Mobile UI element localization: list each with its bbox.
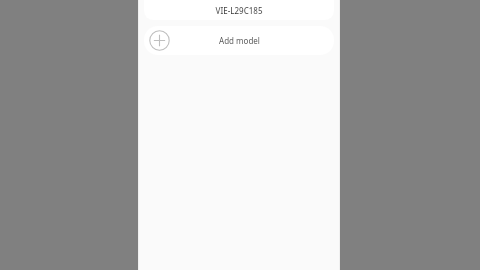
button[interactable]: Add model	[144, 26, 334, 55]
staticText: Add model	[219, 35, 260, 46]
other: Add model	[149, 30, 170, 51]
staticText: VIE-L29C185	[215, 5, 263, 16]
button[interactable]: VIE-L29C185	[144, 0, 334, 20]
